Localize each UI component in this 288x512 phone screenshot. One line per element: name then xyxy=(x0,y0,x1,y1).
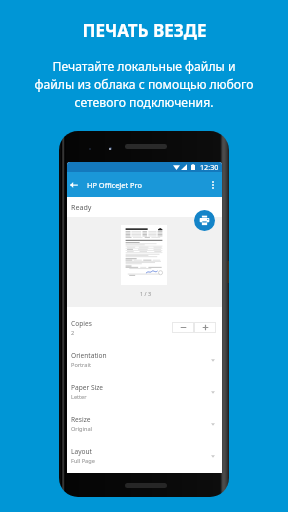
staticText: Copies xyxy=(71,319,92,328)
button[interactable]: More options xyxy=(206,172,220,197)
staticText: Original xyxy=(71,425,93,433)
button[interactable]: Copies xyxy=(67,307,222,339)
staticText: Full Page xyxy=(71,457,95,465)
staticText: 12:30 xyxy=(200,162,219,172)
staticText: ПЕЧАТЬ ВЕЗДЕ xyxy=(82,19,207,42)
staticText: Orientation xyxy=(71,351,107,360)
staticText: Resize xyxy=(71,415,91,424)
button[interactable]: Back xyxy=(67,172,80,197)
button[interactable]: Decrease copies xyxy=(172,322,194,333)
staticText: 1 / 3 xyxy=(140,290,151,297)
staticText: HP OfficeJet Pro xyxy=(87,180,142,190)
staticText: Печатайте локальные файлы и файлы из обл… xyxy=(0,58,288,111)
staticText: 2 xyxy=(71,329,75,337)
button[interactable]: Resize xyxy=(67,403,222,435)
staticText: Ready xyxy=(71,202,92,212)
button[interactable]: Print xyxy=(194,210,215,231)
button[interactable]: Increase copies xyxy=(194,322,216,333)
button[interactable]: Layout xyxy=(67,435,222,467)
staticText: Portrait xyxy=(71,361,91,369)
button[interactable]: Orientation xyxy=(67,339,222,371)
staticText: Letter xyxy=(71,393,87,401)
staticText: Layout xyxy=(71,447,92,456)
button[interactable]: Paper Size xyxy=(67,371,222,403)
staticText: Paper Size xyxy=(71,383,104,392)
